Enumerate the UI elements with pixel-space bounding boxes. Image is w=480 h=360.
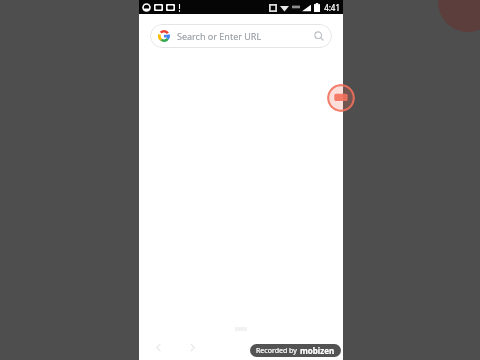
staticText: mobizen	[300, 345, 335, 356]
staticText: Recorded by	[256, 346, 297, 356]
staticText: 4:41	[324, 2, 340, 13]
button[interactable]: Forward	[181, 336, 203, 358]
staticText: Search or Enter URL	[177, 30, 310, 42]
button[interactable]: Search or Enter URL	[150, 24, 332, 48]
button[interactable]: Mobizen recorder	[327, 84, 355, 112]
other: Search	[314, 31, 324, 41]
button[interactable]: Back	[147, 336, 169, 358]
